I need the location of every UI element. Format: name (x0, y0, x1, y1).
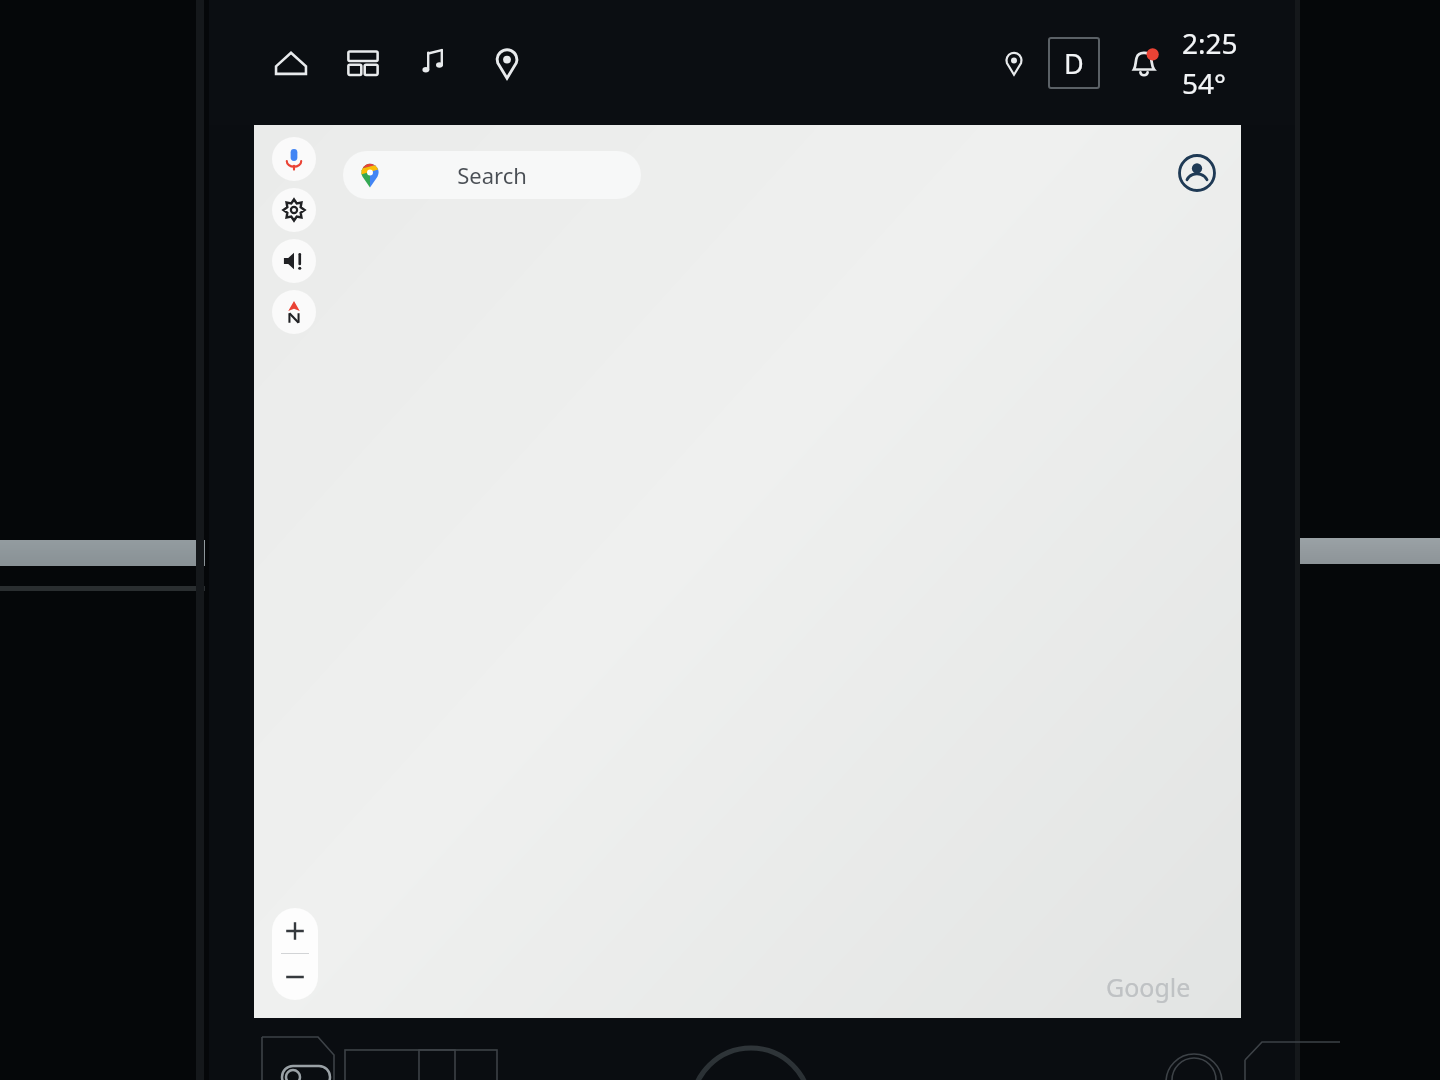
staticText: 54° (1182, 64, 1227, 102)
staticText: D (1064, 45, 1084, 82)
button[interactable]: Zoom in (272, 908, 318, 953)
button[interactable]: Apps (337, 37, 389, 89)
button[interactable]: Account (1175, 151, 1219, 195)
button[interactable]: Search (343, 151, 641, 199)
button[interactable]: Navigation (481, 37, 533, 89)
button[interactable]: Settings (272, 188, 316, 232)
button[interactable]: Mute alerts (272, 239, 316, 283)
button[interactable]: Zoom out (272, 954, 318, 1000)
staticText: Search (457, 160, 527, 190)
staticText: Google (1106, 970, 1191, 1004)
button[interactable]: Gear position Drive (1048, 37, 1100, 89)
button[interactable]: Home (265, 37, 317, 89)
staticText: 2:25 (1182, 24, 1238, 62)
button[interactable]: Media (409, 37, 461, 89)
button[interactable]: Notifications (1120, 39, 1168, 87)
button[interactable]: Compass north up (272, 290, 316, 334)
button[interactable]: Voice search (272, 137, 316, 181)
button[interactable]: Location (992, 41, 1036, 85)
